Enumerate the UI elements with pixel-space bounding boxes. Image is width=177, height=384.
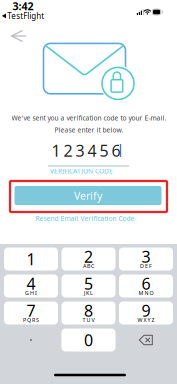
button[interactable]: Verify (14, 186, 161, 205)
button[interactable]: Back (3, 22, 35, 50)
button[interactable]: Delete (119, 328, 173, 351)
staticText: G H I (25, 289, 37, 297)
button[interactable]: Period (4, 328, 58, 351)
staticText: P Q R S (23, 316, 39, 324)
staticText: 0 (84, 329, 93, 351)
staticText: 2 (84, 246, 93, 267)
staticText: 1 (26, 248, 35, 270)
staticText: Verify (74, 188, 102, 203)
staticText: 7 (26, 300, 35, 321)
staticText: T U V (82, 316, 94, 324)
staticText: VERIFICATION CODE (50, 167, 113, 175)
staticText: 1 2 3 4 5 6 (51, 140, 120, 161)
staticText: 5 (84, 273, 93, 294)
button[interactable]: 6 (119, 274, 173, 297)
staticText: We've sent you a verification code to yo… (11, 114, 166, 122)
staticText: 9 (141, 300, 150, 321)
button[interactable]: 0 (61, 328, 115, 351)
button[interactable]: 3 (119, 247, 173, 270)
staticText: J K L (84, 289, 93, 297)
button[interactable]: 1 (4, 247, 58, 270)
staticText: Please enter it below. (54, 126, 123, 134)
staticText: 8 (84, 300, 93, 321)
staticText: M N O (138, 289, 153, 297)
button[interactable]: 7 (4, 301, 58, 324)
staticText: A B C (83, 262, 94, 270)
staticText: 3 (141, 246, 150, 267)
button[interactable]: 5 (61, 274, 115, 297)
button[interactable]: 8 (61, 301, 115, 324)
button[interactable]: 9 (119, 301, 173, 324)
staticText: D E F (140, 262, 152, 270)
staticText: W X Y Z (137, 316, 154, 324)
staticText: 3:42 (12, 0, 33, 13)
staticText: TestFlight (7, 11, 44, 21)
staticText: 4 (26, 273, 35, 294)
staticText: Resend Email Verification Code (35, 214, 134, 223)
button[interactable]: 4 (4, 274, 58, 297)
staticText: 6 (141, 273, 150, 294)
button[interactable]: Resend Email Verification Code (25, 212, 145, 224)
button[interactable]: 2 (61, 247, 115, 270)
